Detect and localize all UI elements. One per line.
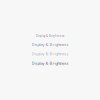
staticText: Display & Brightness xyxy=(31,60,68,66)
staticText: Display & Brightness xyxy=(36,34,64,38)
staticText: Display & Brightness xyxy=(31,42,68,47)
staticText: Display & Brightness xyxy=(31,51,68,56)
